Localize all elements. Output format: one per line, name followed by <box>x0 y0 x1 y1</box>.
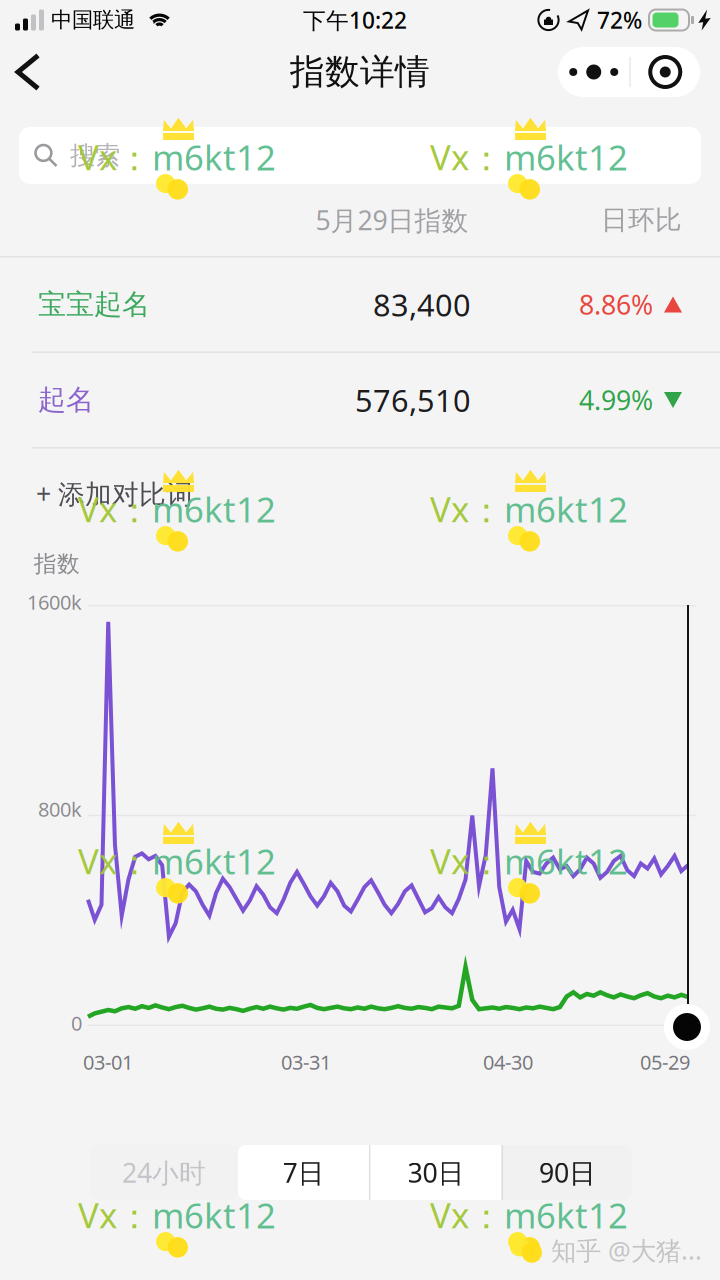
staticText: 800k <box>38 796 82 822</box>
staticText: m6kt12 <box>504 838 628 884</box>
staticText: 03-01 <box>83 1049 133 1075</box>
staticText: 90日 <box>539 1155 596 1190</box>
staticText: 起名 <box>38 383 94 417</box>
button[interactable]: 90日 <box>503 1145 632 1200</box>
staticText: 576,510 <box>355 380 471 420</box>
staticText: 宝宝起名 <box>38 287 150 322</box>
staticText: + 添加对比词 <box>36 476 193 511</box>
staticText: 日环比 <box>601 204 682 236</box>
staticText: 指数详情 <box>290 51 430 93</box>
staticText: m6kt12 <box>504 134 628 180</box>
button[interactable]: 24小时 <box>90 1145 238 1200</box>
staticText: 4.99% <box>579 382 653 418</box>
staticText: 知乎 @大猪蹄子 <box>551 1233 720 1267</box>
staticText: Vx： <box>78 134 152 180</box>
staticText: m6kt12 <box>504 486 628 532</box>
staticText: 0 <box>71 1010 82 1036</box>
staticText: m6kt12 <box>152 1192 276 1238</box>
staticText: Vx： <box>430 486 504 532</box>
staticText: 03-31 <box>281 1049 331 1075</box>
button[interactable]: 30日 <box>370 1145 501 1200</box>
staticText: m6kt12 <box>504 1192 628 1238</box>
staticText: 搜索 <box>70 140 120 171</box>
button[interactable]: + 添加对比词 <box>0 448 720 538</box>
button[interactable]: More <box>558 47 629 97</box>
staticText: 1600k <box>27 589 82 615</box>
staticText: 中国联通 <box>51 7 135 33</box>
button[interactable]: 7日 <box>238 1145 369 1200</box>
staticText: Vx： <box>78 486 152 532</box>
staticText: Vx： <box>430 838 504 884</box>
staticText: 05-29 <box>640 1049 690 1075</box>
staticText: 83,400 <box>373 284 471 325</box>
button[interactable]: 宝宝起名 <box>0 257 720 351</box>
staticText: 24小时 <box>122 1155 206 1190</box>
staticText: 5月29日指数 <box>315 202 468 238</box>
button[interactable]: Back <box>0 43 64 101</box>
staticText: Vx： <box>78 838 152 884</box>
staticText: 72% <box>597 5 642 35</box>
staticText: 7日 <box>282 1155 324 1190</box>
staticText: 30日 <box>407 1155 464 1190</box>
button[interactable]: 起名 <box>0 353 720 447</box>
staticText: Vx： <box>430 134 504 180</box>
staticText: Vx： <box>78 1192 152 1238</box>
staticText: 指数 <box>34 550 80 578</box>
button[interactable]: 搜索 <box>19 127 701 184</box>
staticText: m6kt12 <box>152 134 276 180</box>
staticText: m6kt12 <box>152 486 276 532</box>
button[interactable]: Close app <box>631 47 700 97</box>
staticText: 8.86% <box>579 287 653 322</box>
staticText: m6kt12 <box>152 838 276 884</box>
staticText: 04-30 <box>483 1049 533 1075</box>
staticText: 下午10:22 <box>303 5 407 35</box>
staticText: Vx： <box>430 1192 504 1238</box>
